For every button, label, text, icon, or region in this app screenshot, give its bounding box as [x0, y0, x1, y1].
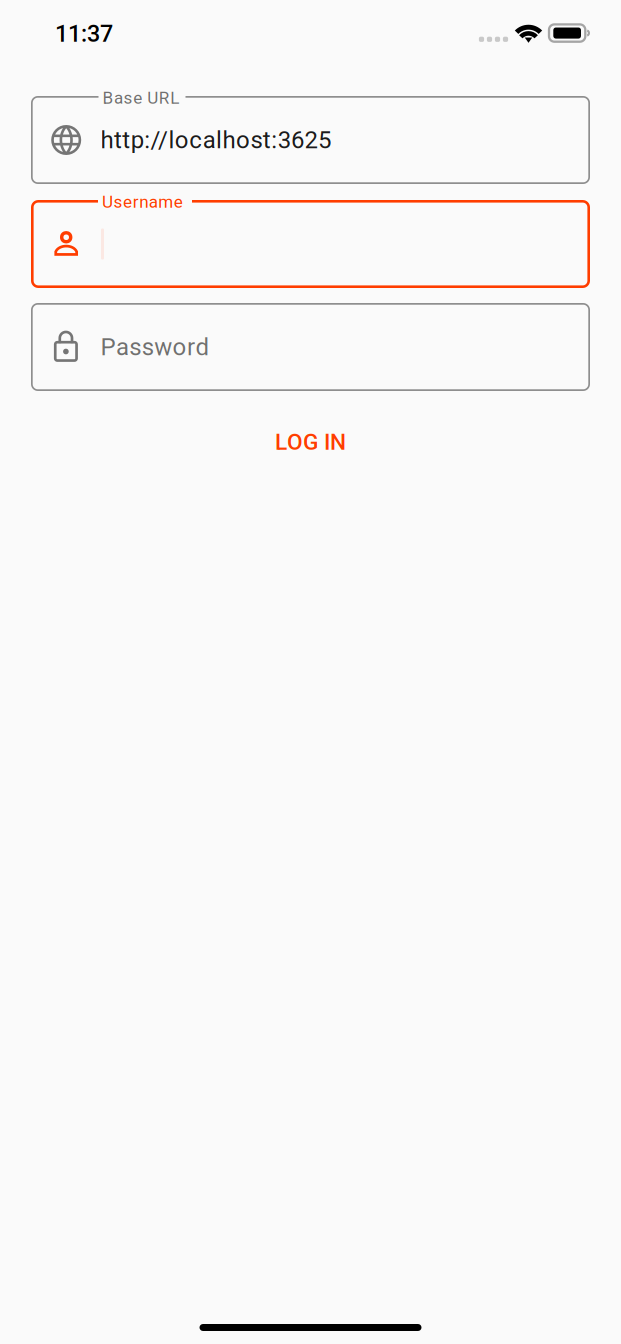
- button[interactable]: Base URL: [31, 96, 590, 184]
- button[interactable]: Password: [31, 303, 590, 391]
- staticText: Password: [100, 333, 209, 361]
- staticText: http://localhost:3625: [100, 126, 331, 154]
- staticText: 11:37: [55, 20, 113, 47]
- button[interactable]: LOG IN: [230, 419, 390, 465]
- staticText: LOG IN: [275, 429, 346, 455]
- button[interactable]: Username: [31, 200, 590, 288]
- staticText: Base URL: [102, 88, 179, 108]
- staticText: Username: [102, 192, 183, 212]
